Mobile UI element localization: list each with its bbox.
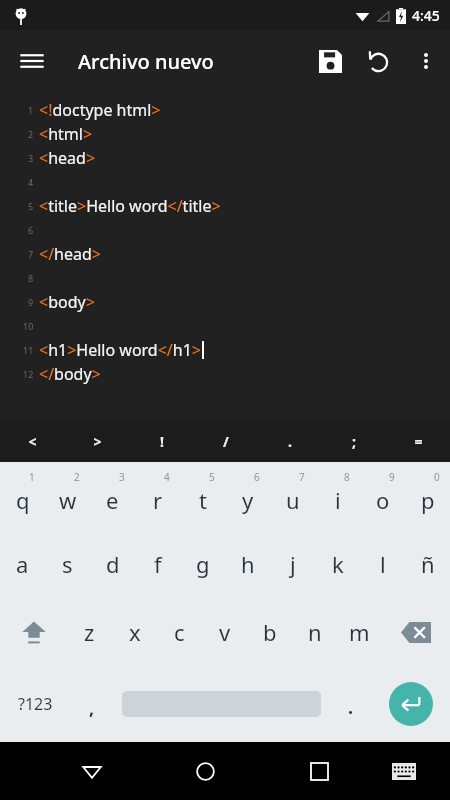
staticText: 5 (28, 200, 34, 212)
staticText: 10 (23, 320, 34, 332)
staticText: . (348, 695, 354, 720)
button[interactable]: n (292, 598, 337, 666)
button[interactable]: Save (306, 37, 354, 85)
button[interactable]: Back (59, 742, 125, 800)
button[interactable]: b (247, 598, 292, 666)
button[interactable]: h (225, 530, 270, 598)
button[interactable]: 1 (0, 462, 45, 530)
staticText: <head> (39, 147, 96, 169)
staticText: , (89, 696, 95, 721)
staticText: 12 (23, 368, 34, 380)
staticText: 5 (209, 470, 215, 484)
button[interactable]: v (202, 598, 247, 666)
staticText: = (414, 432, 423, 451)
staticText: </head> (39, 243, 101, 265)
staticText: ! (160, 432, 164, 451)
button[interactable]: Recent apps (286, 742, 353, 800)
staticText: </body> (39, 363, 101, 385)
staticText: l (380, 549, 386, 579)
button[interactable]: ?123 (0, 666, 70, 742)
button[interactable]: = (386, 420, 450, 462)
staticText: z (84, 617, 95, 647)
staticText: 2 (74, 470, 80, 484)
button[interactable]: More options (402, 37, 450, 85)
button[interactable]: Menu (10, 39, 54, 83)
button[interactable]: Space (113, 666, 329, 742)
staticText: 3 (119, 470, 125, 484)
button[interactable]: 4 (135, 462, 180, 530)
button[interactable]: g (180, 530, 225, 598)
staticText: 4 (164, 470, 170, 484)
staticText: p (421, 485, 435, 515)
staticText: m (349, 617, 370, 647)
staticText: a (16, 549, 29, 579)
button[interactable]: m (337, 598, 382, 666)
button[interactable]: 9 (360, 462, 405, 530)
staticText: 1 (29, 470, 35, 484)
button[interactable]: l (360, 530, 405, 598)
button[interactable]: Enter (372, 666, 450, 742)
staticText: c (174, 617, 185, 647)
staticText: j (290, 549, 296, 579)
button[interactable]: ! (130, 420, 194, 462)
staticText: <body> (39, 291, 95, 313)
button[interactable]: Change keyboard (370, 742, 437, 800)
staticText: 2 (28, 128, 34, 140)
button[interactable]: x (112, 598, 157, 666)
button[interactable]: 5 (180, 462, 225, 530)
staticText: 9 (389, 470, 395, 484)
staticText: 4:45 (412, 6, 440, 25)
staticText: t (199, 485, 207, 515)
button[interactable]: < (0, 420, 65, 462)
button[interactable]: / (194, 420, 258, 462)
staticText: ?123 (18, 693, 53, 715)
staticText: h (241, 549, 255, 579)
staticText: q (16, 485, 30, 515)
button[interactable]: 2 (45, 462, 90, 530)
staticText: 7 (299, 470, 305, 484)
staticText: 6 (254, 470, 260, 484)
staticText: 9 (28, 296, 34, 308)
staticText: x (129, 617, 141, 647)
button[interactable]: . (258, 420, 322, 462)
staticText: o (376, 485, 390, 515)
staticText: <!doctype html> (39, 99, 161, 121)
button[interactable]: k (315, 530, 360, 598)
staticText: <h1>Hello word</h1> (39, 339, 202, 361)
staticText: 6 (28, 224, 34, 236)
button[interactable]: 8 (315, 462, 360, 530)
staticText: 8 (28, 272, 34, 284)
button[interactable]: ñ (405, 530, 450, 598)
button[interactable]: 3 (90, 462, 135, 530)
staticText: i (335, 485, 341, 515)
button[interactable]: a (0, 530, 45, 598)
staticText: ; (352, 432, 356, 451)
staticText: 1 (28, 104, 34, 116)
staticText: w (59, 485, 77, 515)
staticText: 3 (28, 152, 34, 164)
button[interactable]: ; (322, 420, 386, 462)
button[interactable]: Undo (354, 37, 402, 85)
staticText: b (263, 617, 277, 647)
button[interactable]: Home (172, 742, 239, 800)
staticText: Archivo nuevo (78, 48, 214, 75)
button[interactable]: d (90, 530, 135, 598)
button[interactable]: j (270, 530, 315, 598)
button[interactable]: Shift (0, 598, 67, 666)
button[interactable]: , (70, 666, 113, 742)
button[interactable]: > (65, 420, 130, 462)
button[interactable]: Backspace (382, 598, 450, 666)
button[interactable]: s (45, 530, 90, 598)
button[interactable]: 0 (405, 462, 450, 530)
staticText: . (288, 432, 292, 451)
button[interactable]: 6 (225, 462, 270, 530)
staticText: 4 (28, 176, 34, 188)
button[interactable]: f (135, 530, 180, 598)
button[interactable]: 7 (270, 462, 315, 530)
staticText: f (154, 549, 162, 579)
staticText: ñ (421, 549, 435, 579)
button[interactable]: c (157, 598, 202, 666)
button[interactable]: z (67, 598, 112, 666)
button[interactable]: . (329, 666, 372, 742)
staticText: 11 (23, 344, 34, 356)
